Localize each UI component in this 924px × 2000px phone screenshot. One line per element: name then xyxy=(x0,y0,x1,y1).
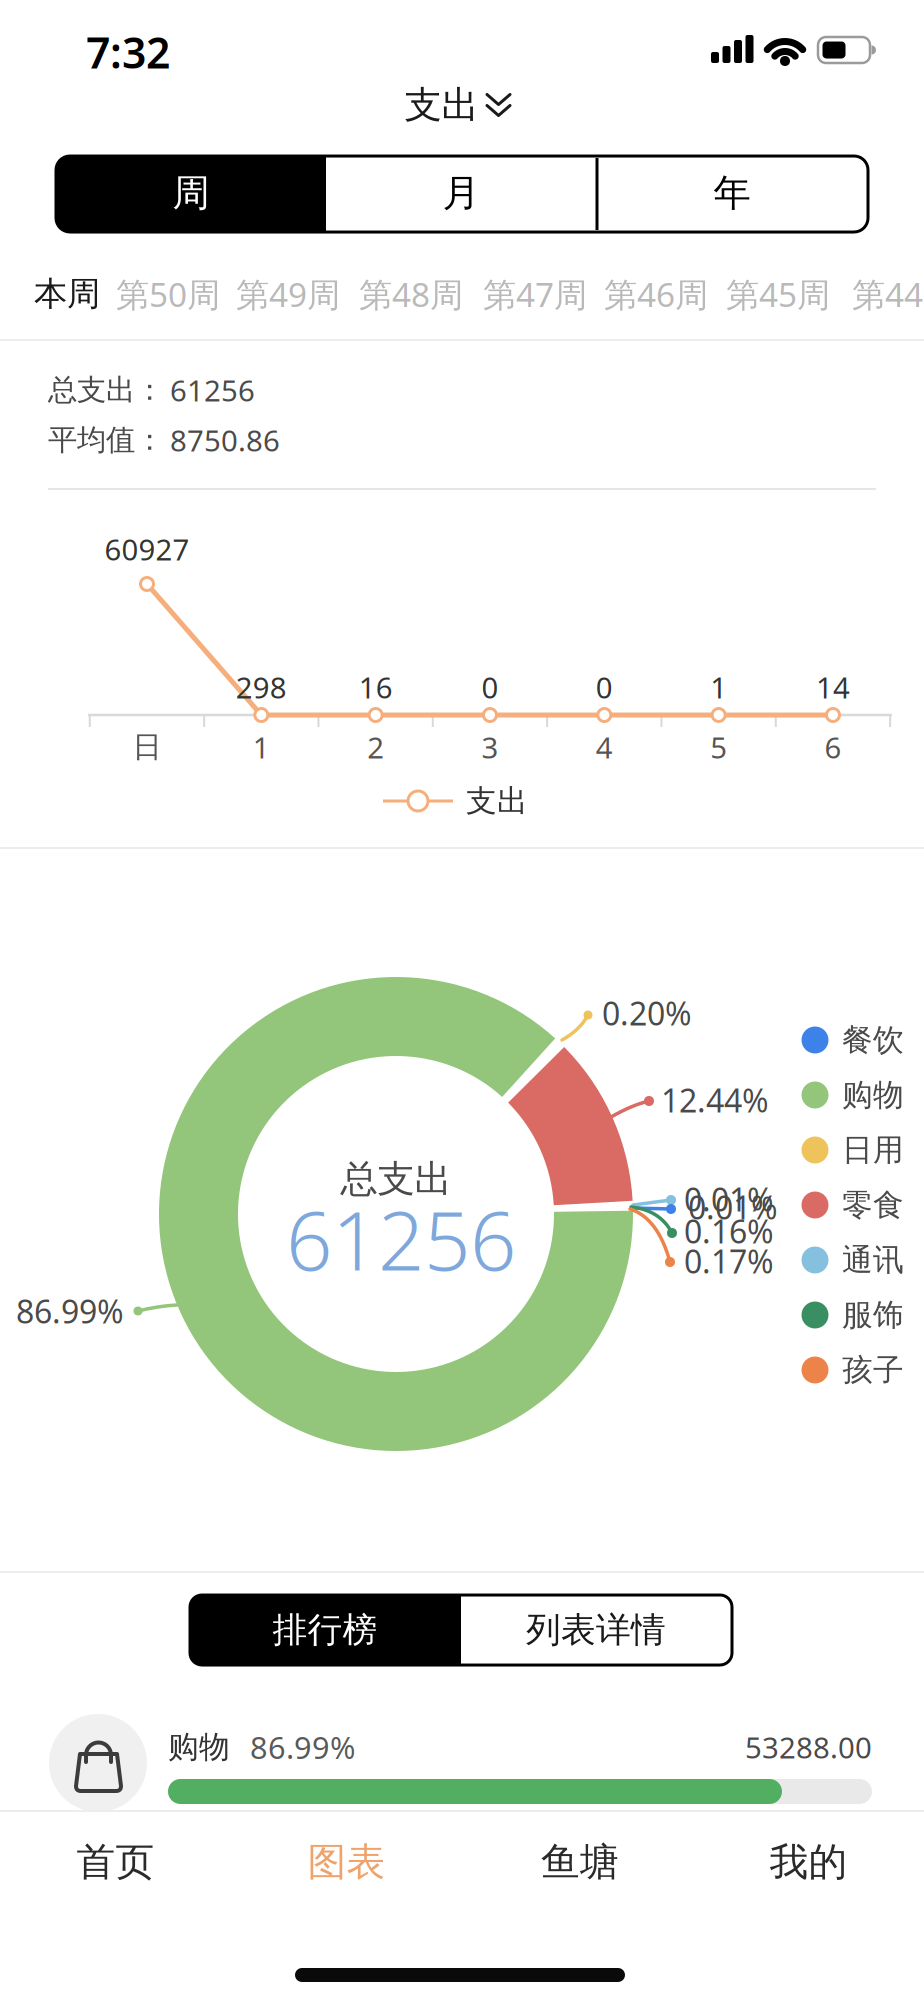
button[interactable]: 第49周 xyxy=(236,272,340,316)
button[interactable]: 图表 xyxy=(231,1812,462,1912)
staticText: 鱼塘 xyxy=(541,1838,619,1886)
staticText: 12.44% xyxy=(661,1079,769,1121)
staticText: 1 xyxy=(253,727,270,766)
staticText: 支出 xyxy=(466,782,528,820)
staticText: 2 xyxy=(367,727,384,766)
staticText: 61256 xyxy=(170,370,255,409)
button[interactable]: 第50周 xyxy=(116,272,220,316)
button[interactable]: 第44周 xyxy=(852,272,924,316)
staticText: 6 xyxy=(824,727,841,766)
button[interactable]: 列表详情 xyxy=(461,1595,731,1665)
button[interactable]: 第45周 xyxy=(726,272,830,316)
staticText: 列表详情 xyxy=(526,1609,666,1651)
staticText: 首页 xyxy=(76,1838,154,1886)
staticText: 第47周 xyxy=(483,272,587,316)
staticText: 7:32 xyxy=(86,24,170,80)
staticText: 零食 xyxy=(842,1186,904,1224)
staticText: 3 xyxy=(481,727,498,766)
staticText: 支出 xyxy=(404,82,478,128)
staticText: 86.99% xyxy=(250,1727,355,1767)
staticText: 61256 xyxy=(286,1185,516,1293)
button[interactable]: 我的 xyxy=(693,1812,924,1912)
staticText: 排行榜 xyxy=(272,1609,377,1651)
staticText: 日用 xyxy=(842,1131,904,1169)
staticText: 孩子 xyxy=(842,1351,904,1389)
staticText: 日 xyxy=(132,729,161,765)
button[interactable]: 年 xyxy=(602,155,862,231)
staticText: 第48周 xyxy=(359,272,463,316)
button[interactable]: 第46周 xyxy=(604,272,708,316)
staticText: 月 xyxy=(442,170,479,216)
staticText: 86.99% xyxy=(16,1290,124,1332)
staticText: 0.01% xyxy=(684,1178,774,1220)
button[interactable]: 本周 xyxy=(34,273,100,314)
staticText: 16 xyxy=(359,667,393,706)
staticText: 第44周 xyxy=(852,272,924,316)
staticText: 年 xyxy=(713,170,750,216)
staticText: 平均值： xyxy=(48,422,164,458)
staticText: 总支出 xyxy=(340,1156,451,1202)
button[interactable]: 周 xyxy=(61,155,321,231)
staticText: 本周 xyxy=(34,273,100,314)
staticText: 我的 xyxy=(769,1838,847,1886)
staticText: 周 xyxy=(172,170,209,216)
staticText: 0 xyxy=(481,667,498,706)
staticText: 0.17% xyxy=(684,1240,774,1282)
staticText: 购物 xyxy=(842,1076,904,1114)
staticText: 14 xyxy=(816,667,850,706)
button[interactable]: 月 xyxy=(331,155,591,231)
button[interactable]: 鱼塘 xyxy=(464,1812,695,1912)
staticText: 0 xyxy=(596,667,613,706)
staticText: 第49周 xyxy=(236,272,340,316)
staticText: 0.20% xyxy=(602,992,692,1034)
staticText: 服饰 xyxy=(842,1296,904,1334)
staticText: 53288.00 xyxy=(745,1727,872,1766)
staticText: 图表 xyxy=(307,1838,385,1886)
staticText: 4 xyxy=(596,727,613,766)
button[interactable]: 排行榜 xyxy=(190,1595,460,1665)
staticText: 5 xyxy=(710,727,727,766)
staticText: 通讯 xyxy=(842,1241,904,1279)
staticText: 第46周 xyxy=(604,272,708,316)
staticText: 60927 xyxy=(104,529,189,568)
staticText: 第50周 xyxy=(116,272,220,316)
button[interactable]: 购物 xyxy=(0,1703,924,1823)
staticText: 1 xyxy=(710,667,727,706)
staticText: 第45周 xyxy=(726,272,830,316)
staticText: 总支出： xyxy=(48,372,164,408)
staticText: 购物 xyxy=(168,1728,230,1766)
button[interactable]: 第47周 xyxy=(483,272,587,316)
staticText: 298 xyxy=(236,667,287,706)
button[interactable]: 第48周 xyxy=(359,272,463,316)
staticText: 0.01% xyxy=(688,1186,778,1228)
button[interactable]: 支出 xyxy=(404,82,511,128)
button[interactable]: 首页 xyxy=(0,1812,231,1912)
staticText: 0.16% xyxy=(684,1210,774,1252)
staticText: 餐饮 xyxy=(842,1021,904,1059)
staticText: 8750.86 xyxy=(170,420,280,459)
